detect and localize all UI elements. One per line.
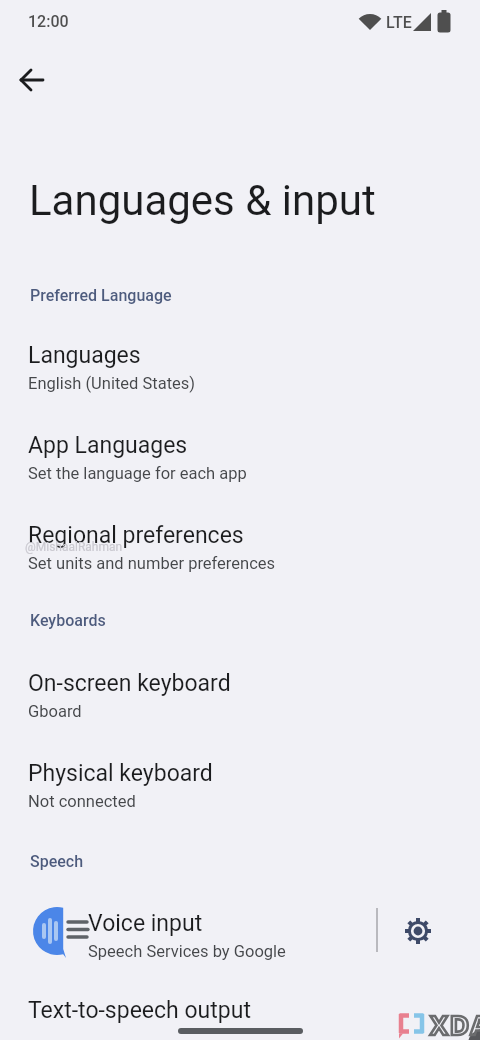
staticText: LTE (386, 13, 412, 32)
staticText: Regional preferences (28, 522, 244, 549)
staticText: Keyboards (30, 611, 106, 630)
staticText: Preferred Language (30, 286, 172, 305)
staticText: Gboard (28, 702, 82, 721)
button[interactable] (392, 905, 444, 957)
staticText: Speech Services by Google (88, 942, 286, 961)
button[interactable] (8, 57, 56, 105)
staticText: Speech (30, 852, 84, 871)
button[interactable]: App Languages (0, 412, 480, 502)
staticText: Languages & input (29, 176, 376, 225)
staticText: @MishaalRahman (25, 540, 123, 554)
staticText: Not connected (28, 792, 136, 811)
staticText: Text-to-speech output (28, 997, 251, 1024)
button[interactable]: Physical keyboard (0, 740, 480, 830)
staticText: English (United States) (28, 374, 196, 393)
staticText: Set units and number preferences (28, 554, 276, 573)
staticText: 12:00 (28, 12, 69, 31)
staticText: App Languages (28, 432, 188, 459)
button[interactable]: Text-to-speech output (0, 978, 480, 1040)
staticText: Voice input (88, 910, 203, 937)
button[interactable]: On-screen keyboard (0, 650, 480, 740)
staticText: Set the language for each app (28, 464, 247, 483)
staticText: On-screen keyboard (28, 670, 231, 697)
button[interactable]: Languages (0, 322, 480, 412)
staticText: Languages (28, 342, 141, 369)
button[interactable]: Voice input (0, 890, 370, 980)
button[interactable]: Regional preferences (0, 502, 480, 592)
staticText: Physical keyboard (28, 760, 213, 787)
staticText: XDA (430, 1006, 480, 1040)
